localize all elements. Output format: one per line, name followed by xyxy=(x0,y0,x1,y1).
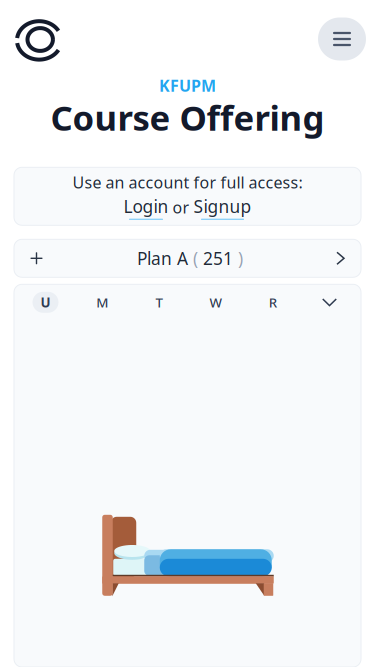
staticText: or xyxy=(172,197,189,218)
button[interactable]: Menu xyxy=(318,17,366,60)
staticText: U xyxy=(40,293,50,311)
button[interactable]: T xyxy=(131,287,187,317)
staticText: ( xyxy=(193,247,203,270)
staticText: ) xyxy=(233,247,243,270)
staticText: Use an account for full access: xyxy=(72,172,302,193)
staticText: W xyxy=(209,293,222,311)
button[interactable]: M xyxy=(74,287,131,317)
staticText: Course Offering xyxy=(50,94,324,140)
staticText: M xyxy=(96,293,108,311)
button[interactable]: R xyxy=(244,287,301,317)
staticText: Login xyxy=(123,195,168,218)
staticText: 251 xyxy=(203,247,233,270)
staticText: Plan A xyxy=(137,247,193,270)
staticText: R xyxy=(269,293,277,311)
button[interactable]: U xyxy=(17,287,74,317)
button[interactable]: Login xyxy=(123,195,168,220)
button[interactable]: W xyxy=(187,287,244,317)
button[interactable]: Plan A xyxy=(14,239,361,277)
button[interactable]: Signup xyxy=(193,195,251,220)
button[interactable]: Expand xyxy=(301,287,358,317)
staticText: Signup xyxy=(193,195,251,218)
staticText: KFUPM xyxy=(159,75,216,96)
staticText: T xyxy=(156,293,163,311)
